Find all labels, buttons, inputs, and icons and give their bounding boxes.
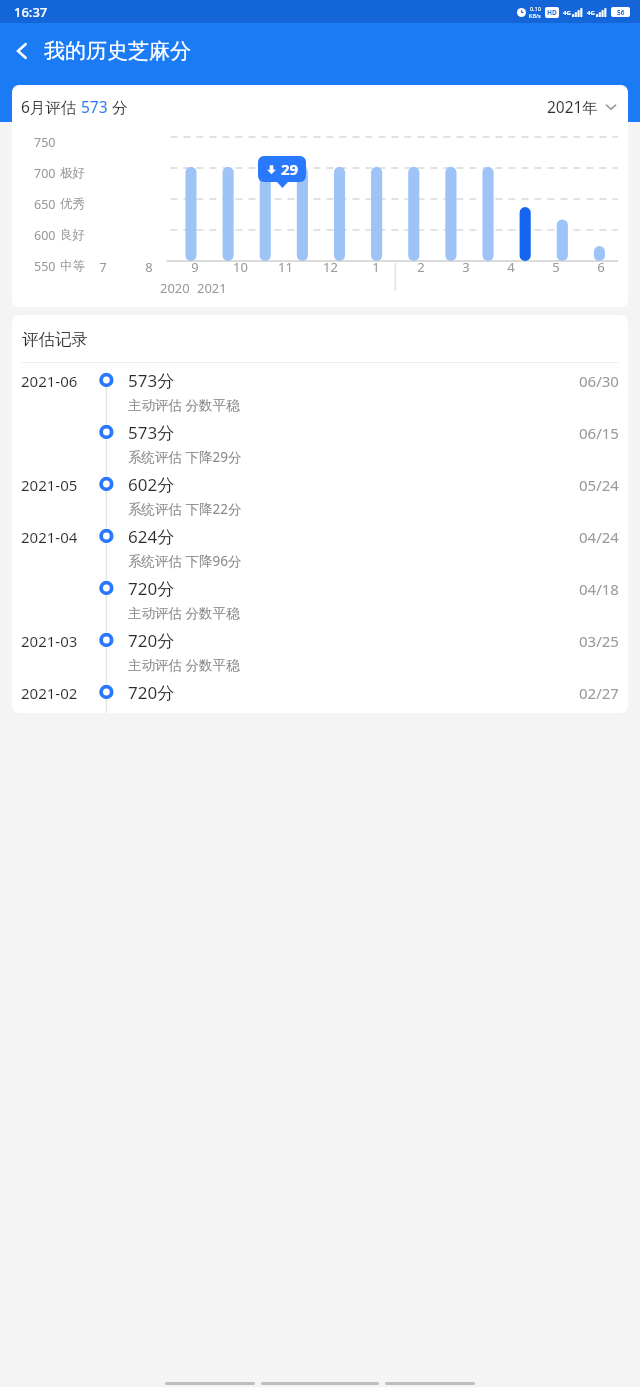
- staticText: 9: [191, 258, 199, 276]
- staticText: 600: [34, 227, 56, 244]
- staticText: 2021年: [547, 96, 598, 117]
- staticText: 2021-05: [21, 475, 78, 495]
- staticText: 720分: [128, 681, 175, 704]
- staticText: 4G: [563, 9, 571, 17]
- staticText: 10: [233, 258, 248, 276]
- button[interactable]: 2021-02: [12, 679, 628, 713]
- staticText: 评估记录: [22, 329, 88, 350]
- staticText: 主动评估 分数平稳: [128, 604, 240, 622]
- staticText: 4: [507, 258, 515, 276]
- staticText: 06/30: [579, 371, 619, 391]
- staticText: 02/27: [579, 683, 619, 703]
- button[interactable]: 2021年: [545, 92, 619, 121]
- button[interactable]: 2021-03: [12, 627, 628, 679]
- staticText: 700: [34, 165, 56, 182]
- staticText: 4G: [587, 9, 595, 17]
- staticText: 2020: [160, 279, 190, 297]
- staticText: KB/s: [529, 12, 541, 19]
- staticText: 1: [372, 258, 380, 276]
- staticText: 720分: [128, 629, 175, 652]
- staticText: 602分: [128, 473, 175, 496]
- staticText: 0.10: [530, 5, 541, 12]
- button[interactable]: 720分: [12, 575, 628, 627]
- staticText: 2021: [197, 279, 227, 297]
- staticText: 6: [597, 258, 605, 276]
- staticText: 650: [34, 196, 56, 213]
- staticText: 7: [99, 258, 107, 276]
- staticText: 系统评估 下降96分: [128, 552, 242, 570]
- staticText: 573分: [128, 369, 175, 392]
- staticText: 2021-06: [21, 371, 78, 391]
- staticText: 573: [81, 96, 108, 117]
- staticText: 2: [417, 258, 425, 276]
- button[interactable]: 2021-06: [12, 367, 628, 419]
- staticText: 56: [617, 8, 625, 17]
- staticText: 分: [108, 96, 128, 117]
- staticText: 8: [145, 258, 153, 276]
- staticText: 3: [462, 258, 470, 276]
- staticText: 系统评估 下降29分: [128, 448, 242, 466]
- staticText: 2021-02: [21, 683, 78, 703]
- staticText: 550: [34, 258, 56, 275]
- button[interactable]: 2021-05: [12, 471, 628, 523]
- staticText: 我的历史芝麻分: [44, 38, 191, 64]
- staticText: 05/24: [579, 475, 619, 495]
- staticText: 720分: [128, 577, 175, 600]
- button[interactable]: 573分: [12, 419, 628, 471]
- staticText: 极好: [60, 165, 85, 181]
- staticText: 主动评估 分数平稳: [128, 656, 240, 674]
- staticText: 06/15: [579, 423, 619, 443]
- staticText: 573分: [128, 421, 175, 444]
- staticText: 11: [278, 258, 293, 276]
- staticText: 5: [552, 258, 560, 276]
- staticText: 624分: [128, 525, 175, 548]
- staticText: 16:37: [14, 3, 48, 21]
- staticText: 主动评估 分数平稳: [128, 396, 240, 414]
- staticText: 04/18: [579, 579, 619, 599]
- staticText: 750: [34, 134, 56, 151]
- button[interactable]: 2021-04: [12, 523, 628, 575]
- staticText: HD: [547, 8, 557, 17]
- button[interactable]: Back: [0, 29, 44, 73]
- staticText: 03/25: [579, 631, 619, 651]
- staticText: 优秀: [60, 196, 85, 212]
- staticText: 6月评估: [21, 96, 81, 117]
- staticText: 2021-04: [21, 527, 78, 547]
- staticText: 04/24: [579, 527, 619, 547]
- staticText: 系统评估 下降22分: [128, 500, 242, 518]
- staticText: 29: [281, 159, 299, 179]
- staticText: 12: [323, 258, 338, 276]
- staticText: 2021-03: [21, 631, 78, 651]
- staticText: 中等: [60, 258, 85, 274]
- staticText: 良好: [60, 227, 85, 243]
